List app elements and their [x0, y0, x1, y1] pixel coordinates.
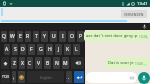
button[interactable]: S	[12, 44, 18, 55]
staticText: T	[35, 33, 38, 40]
button[interactable]: E	[17, 31, 23, 42]
button[interactable]: Enter	[74, 71, 84, 83]
staticText: Y	[43, 33, 46, 40]
button[interactable]: Backspace	[71, 57, 84, 69]
button[interactable]: VERSENDEN	[121, 10, 147, 18]
staticText: 13:39	[139, 35, 147, 39]
button[interactable]: P	[77, 31, 84, 42]
staticText: M	[63, 60, 68, 67]
staticText: ?123	[2, 75, 9, 79]
staticText: J	[58, 46, 60, 53]
other: Backspace	[75, 60, 81, 66]
staticText: H	[48, 46, 52, 53]
button[interactable]: Emoji	[18, 71, 25, 83]
button[interactable]: K	[64, 44, 71, 55]
staticText: K	[66, 46, 70, 53]
button[interactable]: V	[35, 57, 42, 69]
button[interactable]: N	[53, 57, 60, 69]
button[interactable]: aar dat 't niet door ging :p	[84, 31, 149, 41]
staticText: O	[70, 33, 74, 40]
staticText: R	[26, 33, 30, 40]
button[interactable]: Shift	[1, 57, 9, 69]
other: Enter	[76, 74, 83, 81]
staticText: A	[5, 46, 9, 53]
button[interactable]: B	[44, 57, 51, 69]
staticText: U	[52, 33, 56, 40]
staticText: E	[19, 33, 22, 40]
staticText: B	[46, 60, 50, 67]
button[interactable]: .	[66, 71, 72, 83]
staticText: P	[79, 33, 83, 40]
button[interactable]: ?123	[1, 71, 10, 83]
staticText: X	[21, 60, 24, 67]
staticText: D	[21, 46, 25, 53]
button[interactable]: X	[19, 57, 25, 69]
staticText: C	[28, 60, 32, 67]
staticText: L	[75, 46, 78, 53]
button[interactable]: Dat is voor je	[106, 58, 149, 68]
staticText: VERSENDEN	[124, 12, 144, 17]
staticText: V	[37, 60, 41, 67]
button[interactable]: R	[25, 31, 31, 42]
other: Emoji	[19, 75, 24, 80]
button[interactable]: G	[37, 44, 44, 55]
button[interactable]: L	[73, 44, 80, 55]
staticText: Q	[2, 33, 6, 40]
button[interactable]: Y	[41, 31, 48, 42]
button[interactable]: Z	[11, 57, 17, 69]
staticText: Dat is voor je	[108, 60, 134, 66]
button[interactable]: H	[46, 44, 53, 55]
button[interactable]: Record voice message	[138, 72, 150, 84]
button[interactable]: D	[20, 44, 26, 55]
staticText: .	[68, 74, 70, 81]
button[interactable]: Attach	[86, 72, 137, 83]
button[interactable]: English	[27, 71, 64, 83]
staticText: 13:41	[137, 1, 148, 7]
button[interactable]: F	[28, 44, 35, 55]
button[interactable]: A	[4, 44, 10, 55]
button[interactable]: Voice input	[141, 23, 148, 30]
staticText: F	[30, 46, 33, 53]
button[interactable]: M	[62, 57, 69, 69]
other: Attach	[130, 76, 134, 80]
button[interactable]: T	[33, 31, 39, 42]
staticText: 13:40	[135, 62, 143, 66]
button[interactable]: O	[68, 31, 75, 42]
button[interactable]: C	[27, 57, 33, 69]
button[interactable]: J	[55, 44, 62, 55]
staticText: Z	[13, 60, 16, 67]
staticText: S	[14, 46, 17, 53]
button[interactable]: I	[59, 31, 66, 42]
staticText: aar dat 't niet door ging :p	[86, 33, 138, 39]
other: Shift	[3, 61, 8, 66]
button[interactable]: U	[50, 31, 57, 42]
staticText: G	[39, 46, 43, 53]
button[interactable]: ,	[12, 71, 16, 83]
staticText: N	[55, 60, 59, 67]
staticText: I	[62, 33, 64, 40]
staticText: English	[40, 75, 52, 80]
staticText: ,	[13, 74, 15, 81]
button[interactable]: Q	[1, 31, 7, 42]
staticText: W	[10, 33, 15, 40]
button[interactable]: W	[9, 31, 15, 42]
